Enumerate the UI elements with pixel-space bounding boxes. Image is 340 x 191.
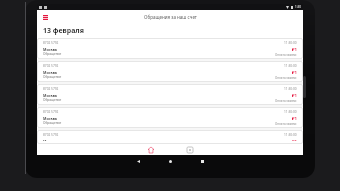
staticText: Обращения за наш счет xyxy=(144,14,197,20)
staticText: Оплата заявки xyxy=(275,122,297,125)
staticText: 8702 5792 xyxy=(43,87,59,91)
staticText: 11:30:00 xyxy=(284,110,297,114)
button[interactable]: Back xyxy=(133,156,143,166)
button[interactable]: Home xyxy=(145,144,156,155)
button[interactable]: Profile xyxy=(184,144,195,155)
staticText: 8702 5792 xyxy=(43,133,59,137)
button[interactable]: Home xyxy=(165,156,175,166)
staticText: Москва xyxy=(43,93,58,98)
staticText: 11:30:00 xyxy=(284,133,297,137)
staticText: Оплата заявки xyxy=(275,76,297,79)
staticText: 1:30 xyxy=(295,5,301,9)
button[interactable]: 8702 5792 xyxy=(37,107,303,128)
staticText: 11:30:00 xyxy=(284,41,297,45)
staticText: 11:30:00 xyxy=(284,87,297,91)
staticText: Оплата заявки xyxy=(275,99,297,102)
staticText: Москва xyxy=(43,139,58,141)
staticText: ₽1 xyxy=(292,70,297,76)
staticText: Оплата заявки xyxy=(275,53,297,56)
button[interactable]: 8702 5792 xyxy=(37,38,303,59)
staticText: 8702 5792 xyxy=(43,41,59,45)
staticText: ₽1 xyxy=(292,93,297,99)
staticText: 8702 5792 xyxy=(43,64,59,68)
button[interactable]: 8702 5792 xyxy=(37,61,303,82)
staticText: Москва xyxy=(43,116,58,121)
staticText: Обращение xyxy=(43,98,62,102)
staticText: Обращение xyxy=(43,75,62,79)
staticText: Обращение xyxy=(43,121,62,125)
staticText: ₽1 xyxy=(292,139,297,141)
button[interactable]: 8702 5792 xyxy=(37,84,303,105)
staticText: ₽1 xyxy=(292,47,297,53)
staticText: 13 февраля xyxy=(43,26,84,36)
staticText: ₽1 xyxy=(292,116,297,122)
staticText: 8702 5792 xyxy=(43,110,59,114)
staticText: Москва xyxy=(43,47,58,52)
staticText: Обращение xyxy=(43,52,62,56)
button[interactable]: Menu xyxy=(41,13,50,22)
button[interactable]: 8702 5792 xyxy=(37,130,303,144)
staticText: Москва xyxy=(43,70,58,75)
staticText: 11:30:00 xyxy=(284,64,297,68)
button[interactable]: Recent apps xyxy=(197,156,207,166)
